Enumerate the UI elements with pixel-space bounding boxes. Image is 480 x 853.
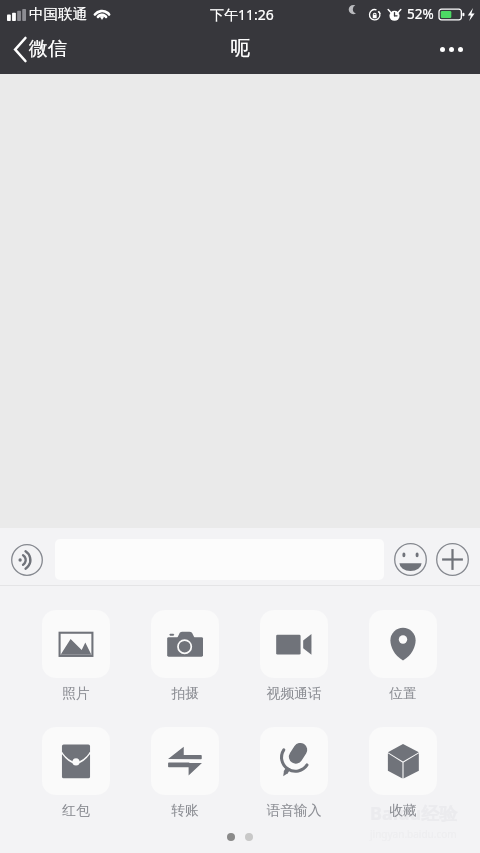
button[interactable]: 语音输入 <box>260 727 328 819</box>
staticText: 照片 <box>62 685 90 702</box>
staticText: 微信 <box>29 37 67 61</box>
button[interactable]: 拍摄 <box>151 610 219 702</box>
button[interactable]: 视频通话 <box>260 610 328 702</box>
staticText: 下午11:26 <box>210 5 274 24</box>
button[interactable]: 位置 <box>369 610 437 702</box>
button[interactable]: 照片 <box>42 610 110 702</box>
button[interactable]: More <box>436 543 469 576</box>
button[interactable]: 红包 <box>42 727 110 819</box>
button[interactable]: More options <box>424 35 480 64</box>
staticText: Baidu经验 <box>370 801 458 826</box>
staticText: 52% <box>407 5 434 23</box>
button[interactable]: Back to 微信 <box>0 31 81 67</box>
staticText: 红包 <box>62 802 90 819</box>
button[interactable]: 收藏 <box>369 727 437 819</box>
staticText: 视频通话 <box>266 685 322 702</box>
button[interactable]: Emoji <box>394 543 427 576</box>
staticText: 呃 <box>230 36 250 61</box>
staticText: 位置 <box>389 685 417 702</box>
staticText: 中国联通 <box>29 5 87 23</box>
staticText: 收藏 <box>389 802 417 819</box>
staticText: 拍摄 <box>171 685 199 702</box>
button[interactable]: 转账 <box>151 727 219 819</box>
staticText: 转账 <box>171 802 199 819</box>
button[interactable]: Voice input <box>11 544 43 576</box>
staticText: 语音输入 <box>266 802 322 819</box>
